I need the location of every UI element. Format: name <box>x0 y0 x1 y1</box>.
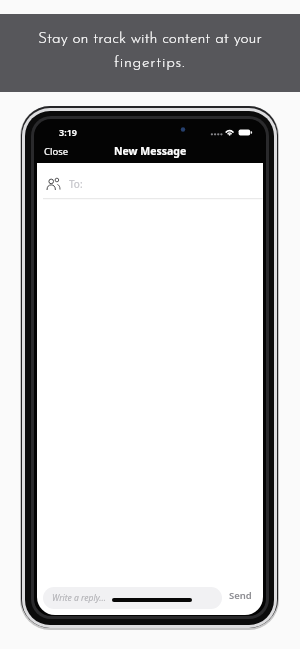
button[interactable]: To: <box>69 177 93 189</box>
button[interactable]: Close <box>44 145 72 158</box>
button[interactable]: Stay on track with content at your <box>0 14 300 92</box>
button[interactable]: Send <box>225 588 255 602</box>
staticText: Close <box>44 145 69 158</box>
staticText: To: <box>69 177 83 189</box>
button[interactable]: Write a reply... <box>43 587 222 609</box>
staticText: fingertips. <box>114 55 186 71</box>
staticText: Send <box>229 589 252 602</box>
staticText: Write a reply... <box>52 592 106 604</box>
staticText: 3:19 <box>59 126 77 138</box>
staticText: Stay on track with content at your <box>38 31 262 47</box>
staticText: New Message <box>114 144 187 158</box>
